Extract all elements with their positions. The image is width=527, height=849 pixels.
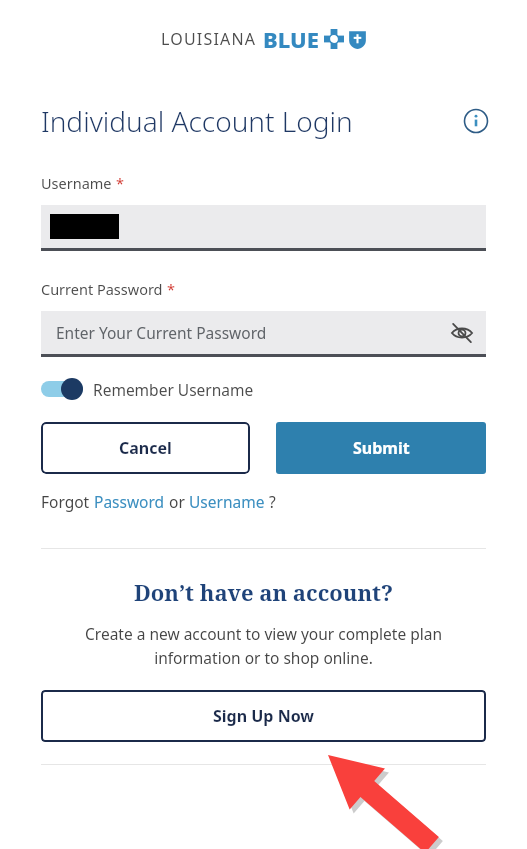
staticText: Forgot [41,491,94,512]
staticText: * [116,173,124,193]
staticText: Remember Username [93,379,254,400]
button[interactable]: Sign Up Now [41,690,486,742]
button[interactable]: Password [94,491,165,512]
staticText: Sign Up Now [213,705,315,727]
button[interactable]: Submit [276,422,486,474]
staticText: Don’t have an account? [41,577,486,607]
staticText: LOUISIANA [161,28,257,50]
staticText: Username [189,491,265,512]
button[interactable] [41,205,486,251]
staticText: ? [265,491,276,512]
button[interactable]: Information [461,106,491,136]
button[interactable]: Enter Your Current Password [41,311,486,357]
staticText: or [165,491,189,512]
staticText: Individual Account Login [41,102,353,140]
staticText: * [167,279,175,299]
button[interactable]: Remember Username toggle [41,378,254,400]
staticText: Create a new account to view your comple… [41,623,486,668]
button[interactable]: Cancel [41,422,250,474]
staticText: Password [94,491,165,512]
staticText: Submit [353,437,410,459]
button[interactable]: Remember Username toggle [41,378,83,400]
button[interactable]: Show password [445,316,479,350]
staticText: Enter Your Current Password [56,322,267,343]
staticText: BLUE [263,24,319,54]
button[interactable]: Username [189,491,265,512]
staticText: Current Password [41,279,163,299]
staticText: Cancel [119,437,172,459]
staticText: Username [41,173,112,193]
